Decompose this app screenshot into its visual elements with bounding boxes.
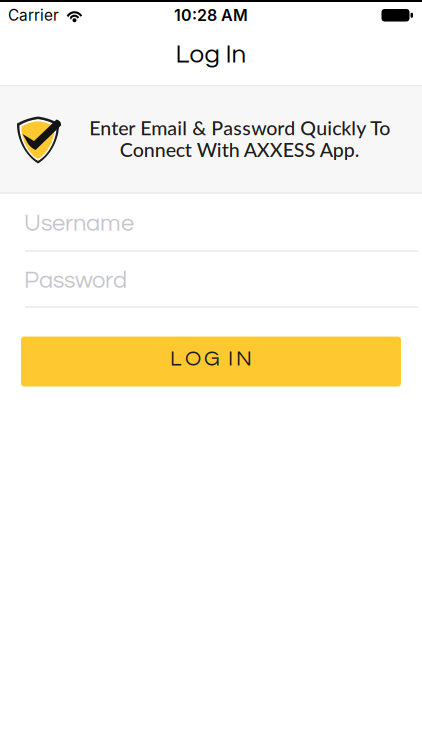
button[interactable]: Log In [21, 336, 401, 386]
staticText: Log In [175, 41, 246, 68]
staticText: Username [24, 211, 134, 236]
staticText: L O G I N [170, 348, 252, 370]
staticText: 10:28 AM [174, 6, 248, 25]
button[interactable]: Password [0, 251, 422, 307]
staticText: Enter Email & Password Quickly To Connec… [89, 117, 390, 160]
staticText: Carrier [8, 6, 59, 25]
button[interactable]: Username [0, 193, 422, 251]
staticText: Password [24, 268, 127, 293]
